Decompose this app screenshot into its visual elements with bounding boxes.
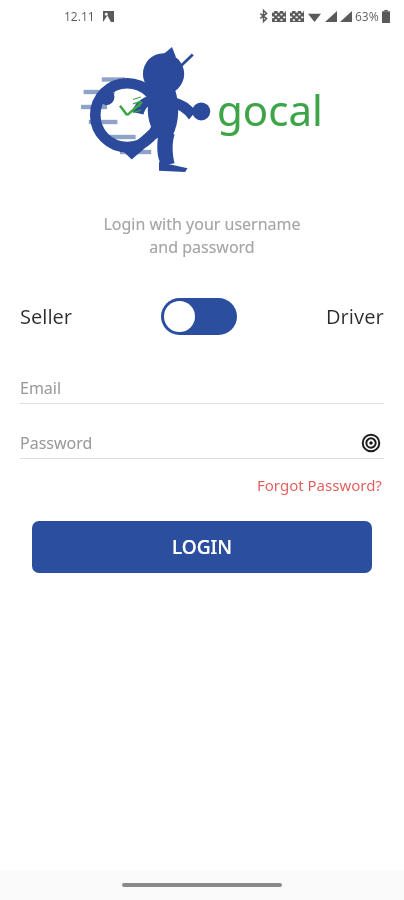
staticText: gocal [217,81,323,138]
staticText: 63% [355,8,379,24]
staticText: LOGIN [172,534,232,560]
staticText: Driver [326,303,384,330]
staticText: Seller [20,303,73,330]
staticText: 12.11 [64,8,95,24]
staticText: Forgot Password? [257,475,382,495]
staticText: Password [20,432,93,454]
staticText: Email [20,377,62,399]
staticText: Login with your username and password [0,213,404,258]
button[interactable]: Show password [358,430,384,456]
button[interactable]: Password [20,428,384,458]
button[interactable]: Forgot Password? [255,471,384,499]
button[interactable]: LOGIN [32,521,372,573]
button[interactable]: Seller or Driver toggle [161,298,237,335]
button[interactable]: Email [20,373,384,403]
